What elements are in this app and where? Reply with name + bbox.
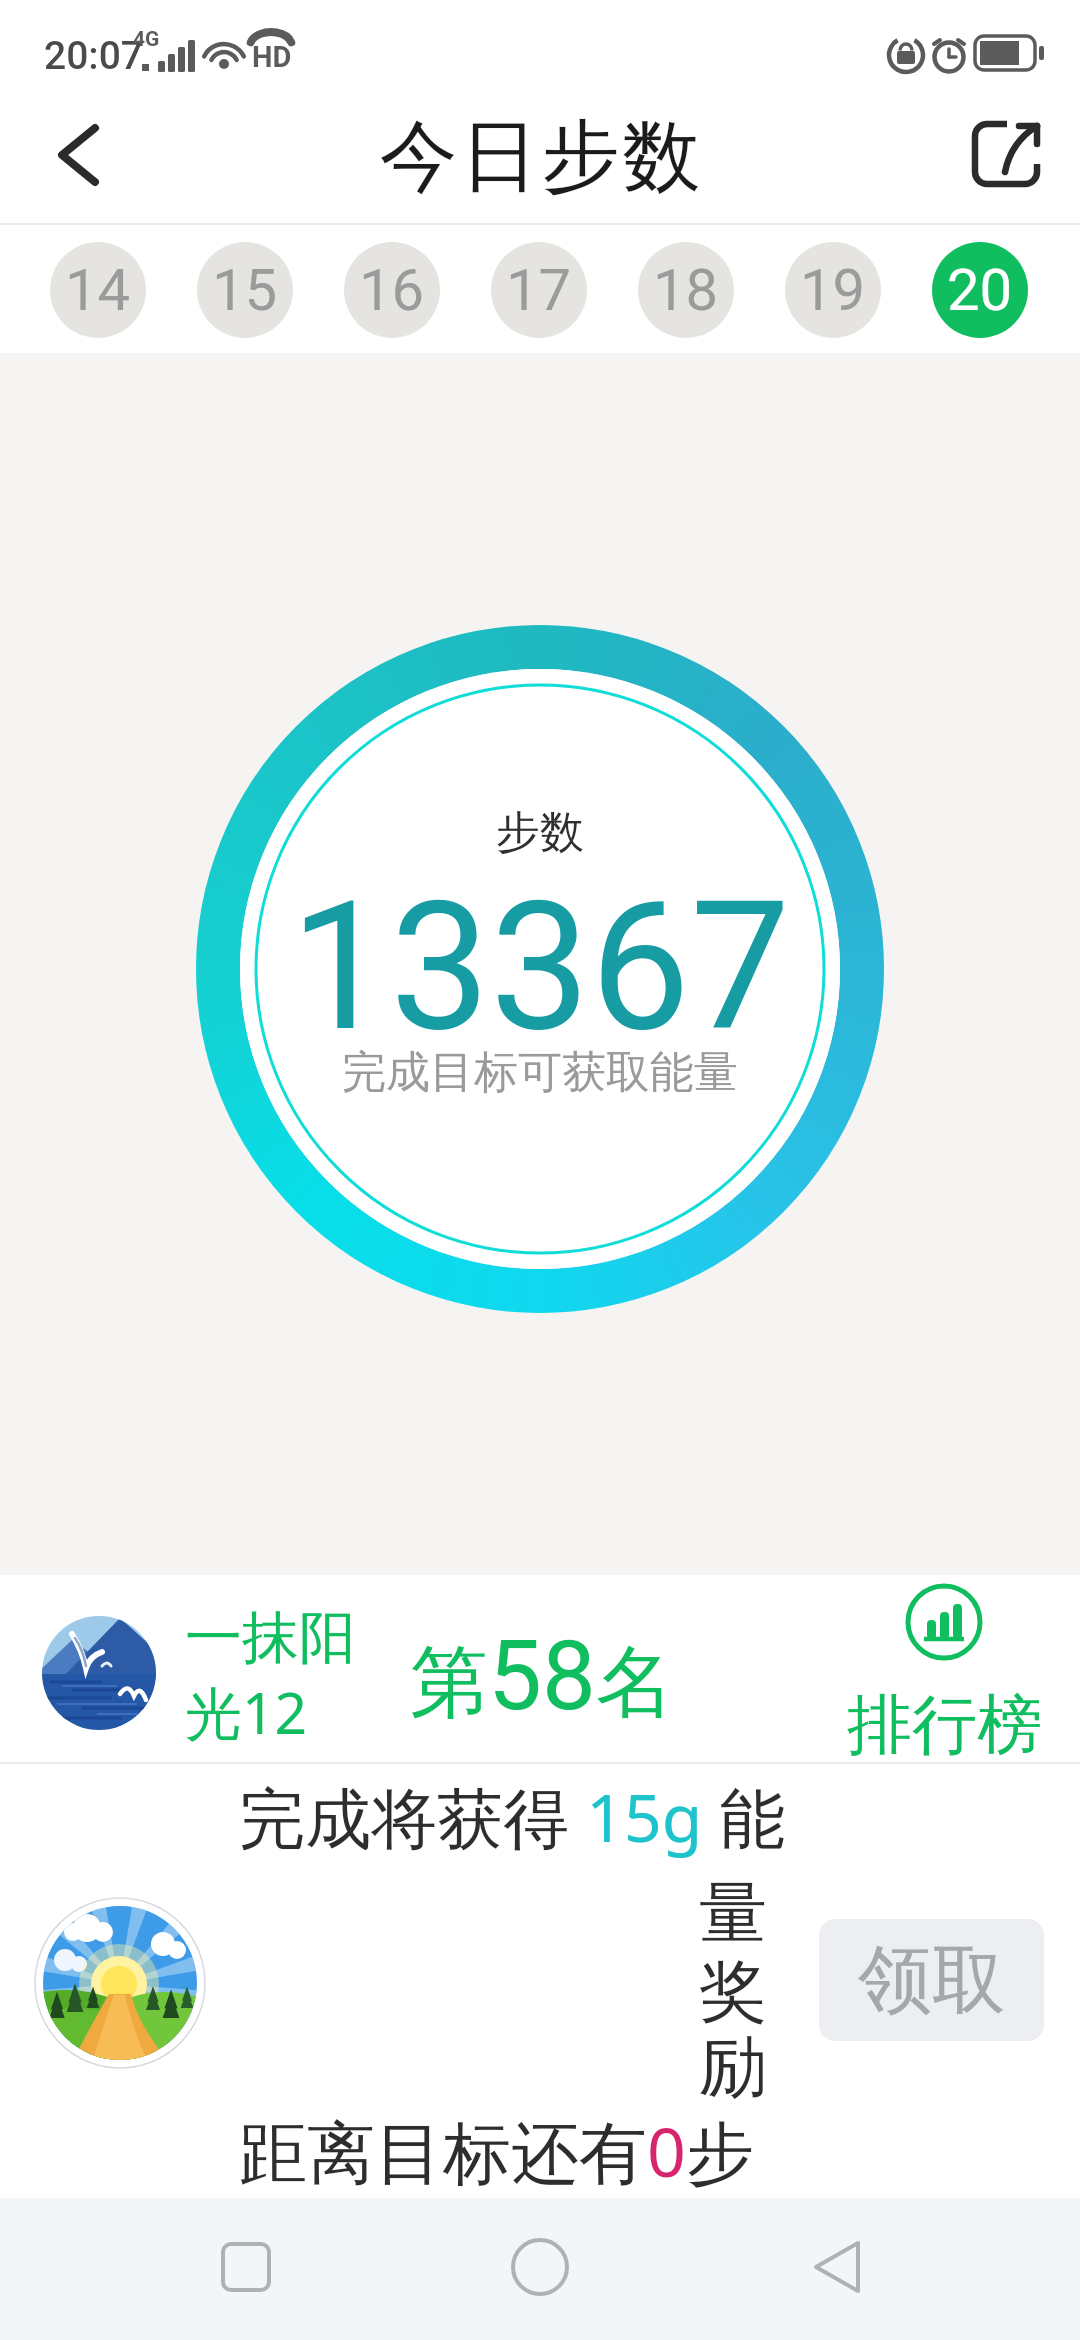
staticText: 19 [800,256,866,324]
staticText: HD [252,40,292,74]
button[interactable]: 19 [785,242,881,338]
staticText: 完成目标可获取能量 [342,1045,738,1100]
staticText: 励 [699,2025,767,2111]
staticText: 14 [65,256,131,324]
staticText: 20:07 [44,33,144,79]
staticText: 第58名 [410,1620,674,1733]
staticText: 13367 [290,863,791,1072]
staticText: 领取 [858,1934,1006,2027]
staticText: 距离目标还有0步 [239,2104,754,2197]
staticText: 量 [699,1871,767,1957]
button[interactable]: 20 [932,242,1028,338]
button[interactable] [186,2207,306,2327]
button[interactable] [480,2207,600,2327]
staticText: 奖 [699,1950,767,2036]
staticText: 18 [653,256,719,324]
button[interactable] [778,2207,898,2327]
button[interactable]: 18 [638,242,734,338]
button[interactable]: 15 [197,242,293,338]
button[interactable] [35,1898,205,2068]
staticText: 4G [133,27,160,52]
staticText: 20 [947,256,1013,324]
button[interactable]: 领取 [819,1919,1044,2041]
button[interactable] [965,112,1055,202]
button[interactable]: 17 [491,242,587,338]
button[interactable] [30,110,120,200]
button[interactable]: 排行榜 [845,1580,1045,1760]
staticText: 一抹阳光12 [185,1602,390,1751]
staticText: 步数 [496,805,584,860]
button[interactable]: 16 [344,242,440,338]
staticText: 17 [506,256,572,324]
staticText: 16 [359,256,425,324]
staticText: 15 [212,256,278,324]
staticText: 今日步数 [378,108,702,206]
staticText: 完成将获得 15g 能 [239,1771,786,1861]
button[interactable]: 14 [50,242,146,338]
staticText: 排行榜 [847,1684,1042,1766]
